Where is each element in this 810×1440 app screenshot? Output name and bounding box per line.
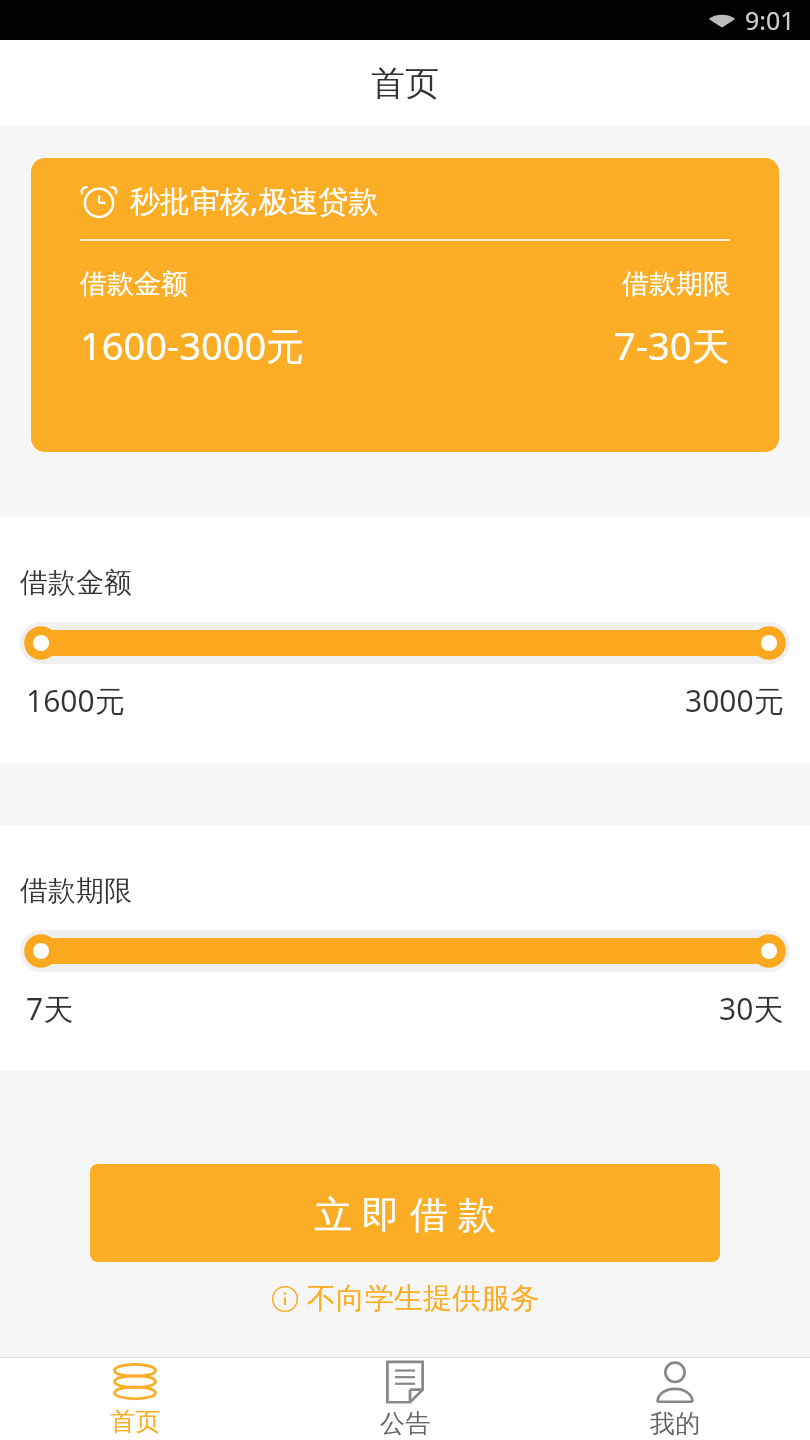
staticText: 立 即 借 款 bbox=[314, 1187, 496, 1239]
staticText: 借款金额 bbox=[20, 565, 132, 600]
staticText: 不向学生提供服务 bbox=[307, 1280, 539, 1317]
staticText: 1600-3000元 bbox=[80, 319, 305, 371]
button[interactable]: 立 即 借 款 bbox=[90, 1164, 720, 1262]
staticText: 首页 bbox=[110, 1406, 160, 1437]
staticText: 首页 bbox=[371, 62, 439, 105]
button[interactable] bbox=[20, 622, 790, 664]
staticText: 借款期限 bbox=[622, 267, 730, 301]
staticText: 公告 bbox=[380, 1408, 430, 1439]
staticText: 9:01 bbox=[745, 3, 795, 37]
button[interactable]: 公告 bbox=[270, 1358, 540, 1440]
button[interactable]: 首页 bbox=[0, 1358, 270, 1440]
staticText: 7-30天 bbox=[614, 319, 730, 371]
button[interactable] bbox=[20, 930, 790, 972]
staticText: 1600元 bbox=[26, 680, 125, 721]
staticText: 3000元 bbox=[685, 680, 784, 721]
button[interactable]: 我的 bbox=[540, 1358, 810, 1440]
staticText: 借款期限 bbox=[20, 873, 132, 908]
button[interactable]: 不向学生提供服务 bbox=[271, 1280, 539, 1317]
staticText: 30天 bbox=[719, 988, 784, 1029]
staticText: 我的 bbox=[650, 1408, 700, 1439]
staticText: 秒批审核,极速贷款 bbox=[130, 180, 379, 221]
button[interactable]: 秒批审核,极速贷款 bbox=[31, 158, 779, 452]
staticText: 借款金额 bbox=[80, 267, 188, 301]
staticText: 7天 bbox=[26, 988, 74, 1029]
